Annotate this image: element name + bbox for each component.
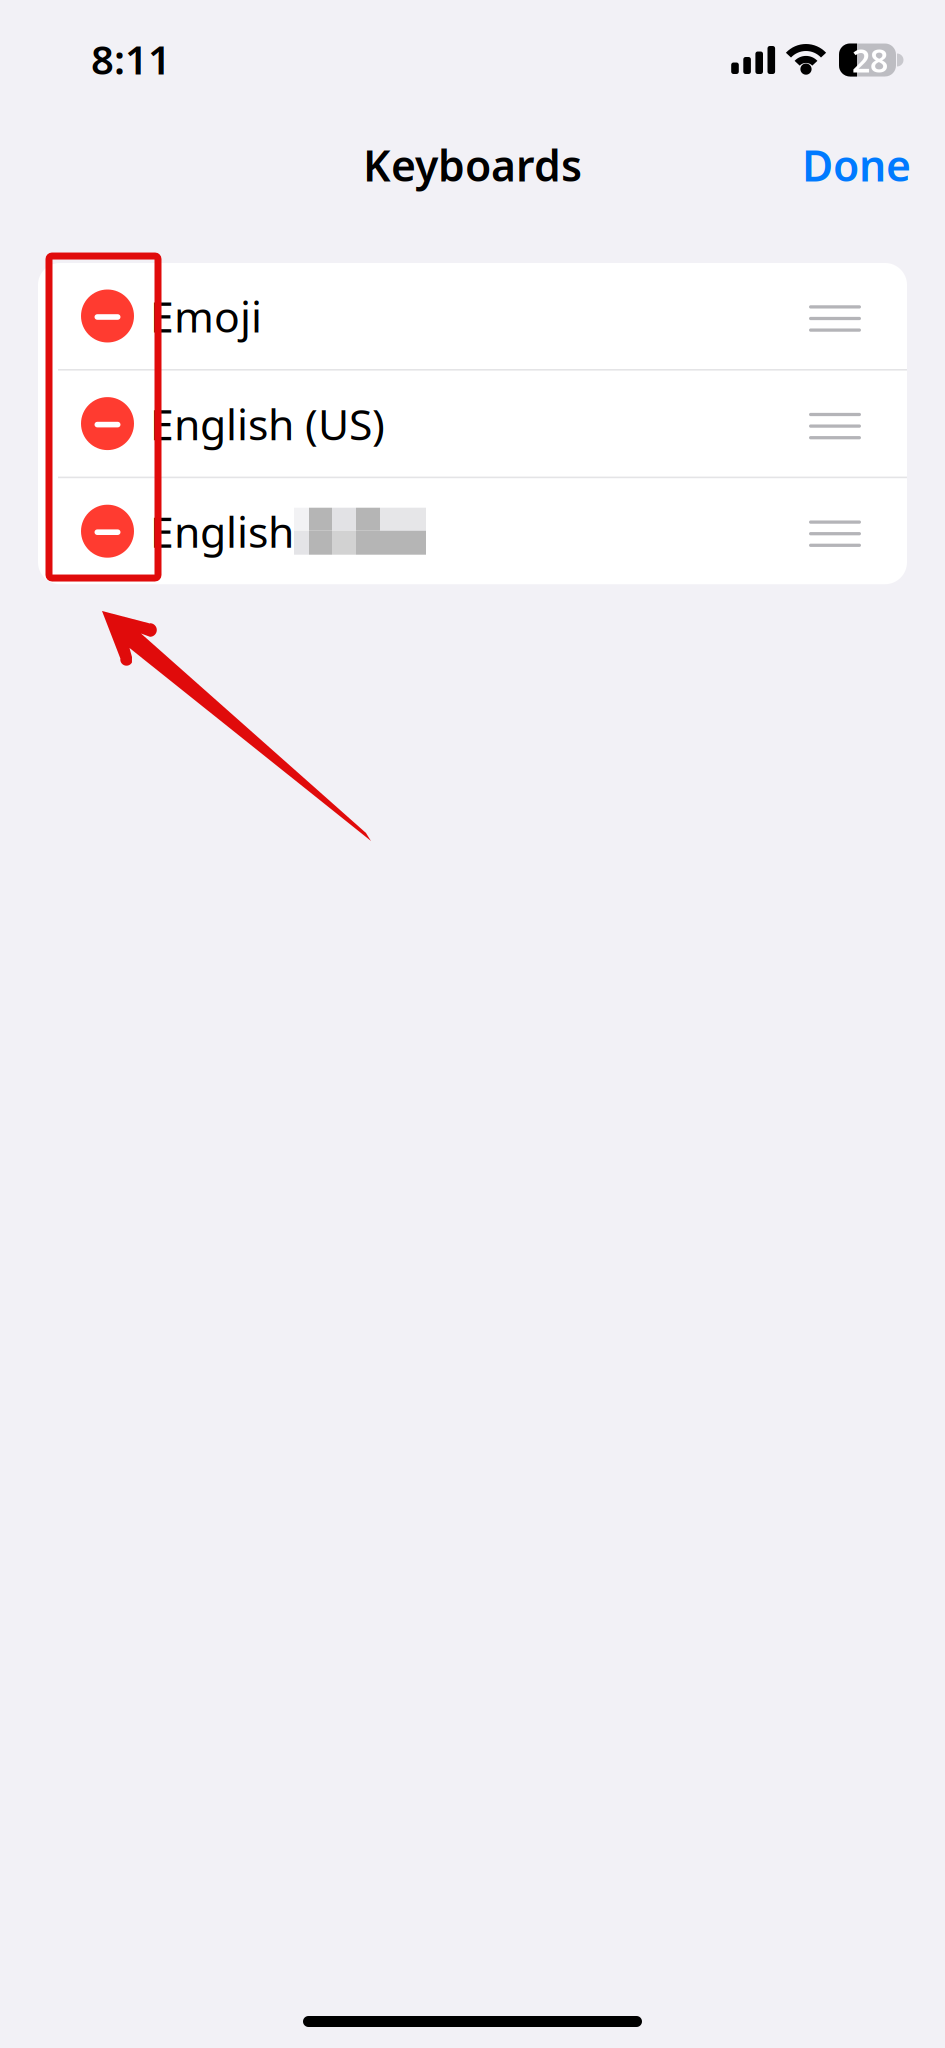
staticText: English — [150, 503, 294, 560]
button[interactable]: Remove keyboard — [81, 478, 134, 584]
button[interactable]: Remove keyboard — [81, 371, 134, 477]
button[interactable]: Reorder — [809, 371, 861, 477]
button[interactable]: Done — [790, 123, 923, 207]
button[interactable]: English (US) — [38, 371, 907, 477]
staticText: 8:11 — [91, 32, 171, 85]
button[interactable]: Reorder — [809, 478, 861, 584]
button[interactable]: Remove keyboard — [81, 263, 134, 369]
staticText: Keyboards — [363, 137, 582, 193]
staticText: English (US) — [150, 395, 385, 452]
button[interactable]: English — [38, 478, 907, 584]
staticText: Emoji — [150, 288, 262, 344]
button[interactable]: Reorder — [809, 263, 861, 369]
staticText: Done — [802, 137, 911, 193]
staticText: 28 — [852, 39, 888, 81]
button[interactable]: Emoji — [38, 263, 907, 369]
